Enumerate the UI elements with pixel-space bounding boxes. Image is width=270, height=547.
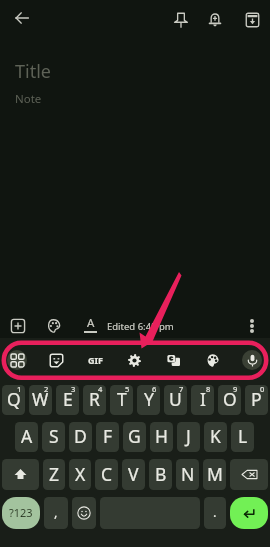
button[interactable]: Stickers: [46, 350, 66, 370]
staticText: P: [251, 387, 262, 411]
staticText: GIF: [88, 354, 103, 366]
button[interactable]: O: [218, 385, 241, 415]
staticText: F: [103, 424, 113, 448]
staticText: Title: [15, 59, 51, 84]
staticText: 0: [260, 385, 265, 394]
staticText: A: [87, 315, 95, 331]
staticText: 3: [71, 385, 76, 394]
button[interactable]: Add: [3, 311, 33, 341]
button[interactable]: More options: [237, 311, 267, 341]
button[interactable]: L: [231, 422, 254, 452]
staticText: Q: [7, 387, 21, 411]
button[interactable]: Q: [2, 385, 25, 415]
button[interactable]: Settings: [124, 350, 144, 370]
button[interactable]: S: [42, 422, 65, 452]
staticText: H: [155, 424, 168, 448]
staticText: R: [89, 387, 100, 411]
staticText: O: [223, 387, 237, 411]
button[interactable]: Formatting: [75, 311, 105, 341]
button[interactable]: M: [203, 459, 226, 490]
staticText: 6: [152, 385, 157, 394]
staticText: 9: [233, 385, 238, 394]
staticText: C: [101, 462, 113, 486]
staticText: E: [63, 387, 73, 411]
staticText: .: [213, 503, 217, 521]
staticText: X: [75, 462, 86, 486]
button[interactable]: W: [29, 385, 52, 415]
staticText: Y: [144, 387, 154, 411]
button[interactable]: ,: [44, 497, 68, 529]
button[interactable]: .: [204, 497, 226, 529]
button[interactable]: Voice input: [242, 350, 262, 370]
button[interactable]: Y: [137, 385, 160, 415]
staticText: ,: [54, 503, 58, 521]
staticText: K: [210, 424, 221, 448]
button[interactable]: T: [110, 385, 133, 415]
staticText: 2: [44, 385, 49, 394]
button[interactable]: Back: [8, 4, 36, 32]
button[interactable]: A: [15, 422, 38, 452]
button[interactable]: GIF: [81, 346, 109, 374]
button[interactable]: Archive: [237, 5, 267, 35]
staticText: Note: [15, 91, 42, 107]
button[interactable]: G: [123, 422, 146, 452]
staticText: 1: [17, 385, 22, 394]
button[interactable]: U: [164, 385, 187, 415]
staticText: U: [169, 387, 182, 411]
staticText: W: [32, 387, 49, 411]
button[interactable]: F: [96, 422, 119, 452]
staticText: G: [128, 424, 141, 448]
button[interactable]: K: [204, 422, 227, 452]
button[interactable]: More options: [7, 350, 27, 370]
staticText: ?123: [9, 505, 33, 520]
staticText: I: [200, 387, 206, 411]
button[interactable]: D: [69, 422, 92, 452]
staticText: T: [117, 387, 127, 411]
button[interactable]: H: [150, 422, 173, 452]
button[interactable]: Reminder: [200, 4, 230, 34]
staticText: V: [128, 462, 139, 486]
button[interactable]: N: [176, 459, 199, 490]
staticText: 8: [206, 385, 211, 394]
button[interactable]: Enter: [230, 497, 268, 529]
button[interactable]: I: [191, 385, 214, 415]
button[interactable]: B: [149, 459, 172, 490]
button[interactable]: Translate: [163, 350, 183, 370]
staticText: N: [181, 462, 195, 486]
staticText: J: [186, 424, 191, 448]
button[interactable]: Pin: [166, 5, 196, 35]
button[interactable]: E: [56, 385, 79, 415]
button[interactable]: P: [245, 385, 268, 415]
button[interactable]: V: [122, 459, 145, 490]
staticText: Edited 6:45 pm: [107, 320, 174, 333]
button[interactable]: Z: [43, 459, 65, 490]
button[interactable]: Palette: [38, 311, 68, 341]
staticText: B: [155, 462, 167, 486]
staticText: A: [21, 424, 33, 448]
button[interactable]: R: [83, 385, 106, 415]
staticText: Z: [49, 462, 60, 486]
button[interactable]: Shift: [2, 459, 39, 490]
button[interactable]: C: [95, 459, 118, 490]
staticText: 4: [98, 385, 103, 394]
staticText: 7: [179, 385, 184, 394]
staticText: 5: [125, 385, 130, 394]
button[interactable]: Emoji: [72, 497, 96, 529]
button[interactable]: ?123: [2, 497, 40, 529]
button[interactable]: Themes: [202, 350, 222, 370]
button[interactable]: J: [177, 422, 200, 452]
staticText: S: [49, 424, 59, 448]
button[interactable]: Backspace: [230, 459, 268, 490]
button[interactable]: X: [69, 459, 91, 490]
staticText: D: [74, 424, 87, 448]
staticText: L: [238, 424, 248, 448]
staticText: M: [207, 462, 223, 486]
